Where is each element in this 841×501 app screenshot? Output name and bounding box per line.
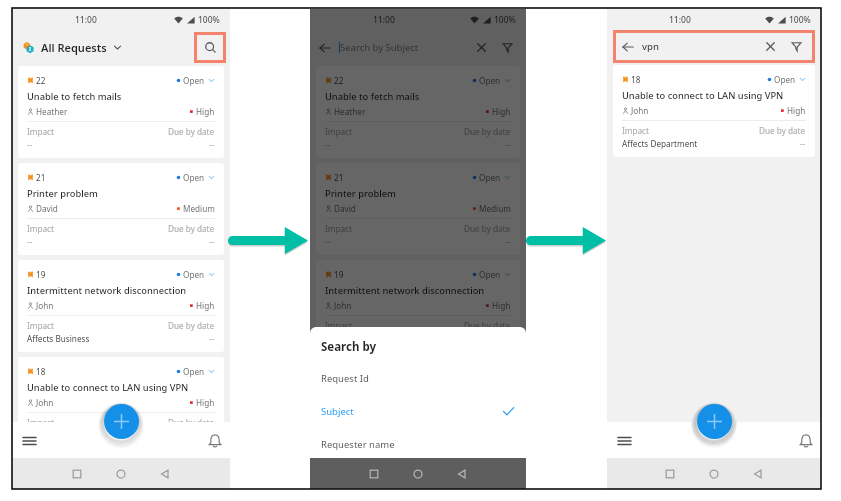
staticText: Printer problem (27, 187, 98, 200)
staticText: John (36, 300, 54, 311)
button[interactable]: Request Id (321, 372, 515, 385)
staticText: Impact (325, 320, 352, 331)
button[interactable]: 18 (316, 357, 520, 449)
staticText: Affects Business (325, 333, 388, 344)
button[interactable]: All Requests (41, 40, 122, 55)
staticText: High (196, 397, 215, 408)
staticText: 18 (631, 74, 641, 85)
staticText: 100% (198, 14, 220, 26)
staticText: Requester name (321, 438, 395, 451)
staticText: 11:00 (669, 14, 691, 26)
staticText: 18 (36, 366, 46, 377)
staticText: Open (774, 74, 796, 85)
staticText: 22 (36, 75, 46, 86)
staticText: Impact (325, 126, 352, 137)
button[interactable]: Menu (19, 431, 39, 451)
staticText: Search by Subject (340, 41, 419, 54)
staticText: Due by date (168, 223, 215, 234)
staticText: Intermittent network disconnection (325, 284, 485, 297)
button[interactable]: Clear (474, 40, 489, 55)
staticText: 11:00 (373, 14, 395, 26)
button[interactable]: Open (176, 172, 215, 183)
staticText: Unable to connect to LAN using VPN (325, 381, 487, 394)
staticText: Due by date (168, 320, 215, 331)
staticText: -- (27, 139, 33, 150)
staticText: High (196, 106, 215, 117)
button[interactable]: Back (613, 30, 815, 63)
staticText: vpn (642, 40, 659, 53)
button[interactable]: Search (194, 32, 226, 63)
staticText: 100% (494, 14, 516, 26)
staticText: 100% (789, 14, 811, 26)
button[interactable]: 19 (316, 260, 520, 352)
button[interactable]: Open (767, 74, 806, 85)
staticText: John (631, 105, 649, 116)
staticText: Impact (27, 320, 54, 331)
button[interactable]: Open (472, 269, 511, 280)
button[interactable]: Subject (321, 405, 515, 418)
button[interactable]: 18 (18, 357, 224, 449)
staticText: Open (479, 269, 501, 280)
button[interactable]: Open (472, 172, 511, 183)
button[interactable]: Add request (104, 404, 139, 439)
staticText: High (492, 106, 511, 117)
button[interactable]: Back (621, 40, 634, 53)
button[interactable]: Filter (500, 40, 515, 55)
staticText: Open (183, 366, 205, 377)
button[interactable]: Menu (614, 431, 634, 451)
staticText: Open (479, 75, 501, 86)
staticText: -- (27, 430, 33, 441)
staticText: 22 (334, 75, 344, 86)
button[interactable]: 21 (316, 163, 520, 255)
staticText: High (492, 300, 511, 311)
staticText: Open (183, 172, 205, 183)
button[interactable]: 21 (18, 163, 224, 255)
staticText: Impact (27, 417, 54, 428)
button[interactable]: Add request (697, 404, 732, 439)
staticText: Due by date (168, 126, 215, 137)
staticText: -- (325, 236, 331, 247)
staticText: Intermittent network disconnection (27, 284, 187, 297)
button[interactable]: 19 (18, 260, 224, 352)
staticText: Impact (27, 223, 54, 234)
button[interactable]: Back (318, 41, 331, 54)
staticText: -- (505, 139, 511, 150)
button[interactable]: 22 (316, 66, 520, 158)
button[interactable]: Clear (763, 39, 778, 54)
staticText: Impact (27, 126, 54, 137)
button[interactable]: 22 (18, 66, 224, 158)
button[interactable]: Filter (789, 39, 804, 54)
staticText: 19 (36, 269, 46, 280)
staticText: -- (27, 236, 33, 247)
staticText: 19 (334, 269, 344, 280)
staticText: Open (183, 75, 205, 86)
button[interactable]: Notifications (205, 431, 225, 451)
staticText: High (196, 300, 215, 311)
staticText: Open (479, 172, 501, 183)
staticText: -- (209, 139, 215, 150)
button[interactable]: Requester name (321, 438, 515, 451)
staticText: Search by (321, 339, 377, 355)
staticText: 11:00 (75, 14, 97, 26)
button[interactable]: Open (176, 75, 215, 86)
staticText: Impact (622, 125, 649, 136)
staticText: 21 (36, 172, 46, 183)
staticText: Subject (321, 405, 354, 418)
button[interactable]: Open (176, 366, 215, 377)
staticText: Due by date (464, 126, 511, 137)
staticText: All Requests (41, 40, 107, 55)
staticText: Printer problem (325, 187, 396, 200)
staticText: -- (209, 430, 215, 441)
button[interactable]: Notifications (796, 431, 816, 451)
staticText: David (334, 203, 356, 214)
button[interactable]: 18 (613, 65, 815, 157)
button[interactable]: Open (472, 75, 511, 86)
staticText: Heather (36, 106, 68, 117)
button[interactable]: Open (176, 269, 215, 280)
